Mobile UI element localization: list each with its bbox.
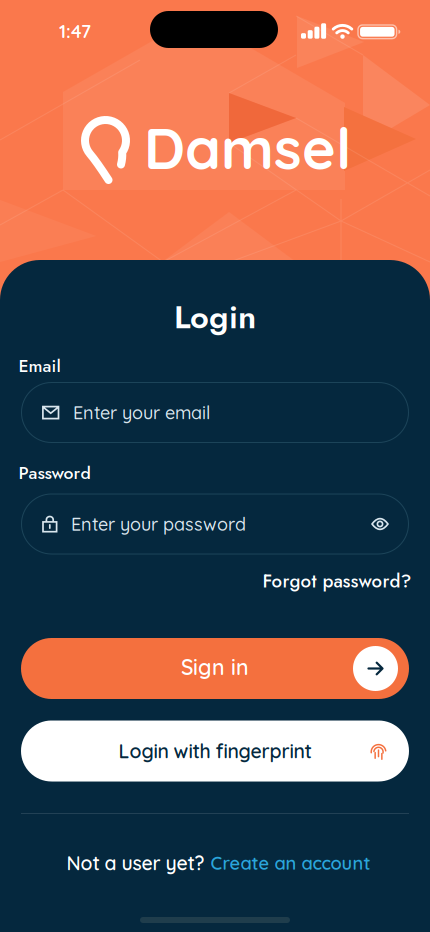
button[interactable]: Login with fingerprint bbox=[21, 720, 409, 781]
staticText: Create an account bbox=[210, 852, 370, 874]
staticText: Sign in bbox=[181, 654, 249, 680]
staticText: Enter your email bbox=[73, 401, 210, 424]
button[interactable]: Forgot password? bbox=[262, 567, 411, 594]
button[interactable]: Not a user yet? bbox=[66, 851, 370, 875]
staticText: Password bbox=[18, 460, 90, 486]
button[interactable]: Sign in bbox=[21, 638, 409, 699]
staticText: Damsel bbox=[144, 112, 351, 183]
staticText: Enter your password bbox=[71, 513, 246, 535]
button[interactable]: Enter your email bbox=[21, 382, 409, 443]
staticText: Forgot password? bbox=[262, 567, 411, 594]
button[interactable]: Enter your password bbox=[21, 493, 409, 554]
staticText: Login with fingerprint bbox=[118, 739, 311, 763]
staticText: Not a user yet? bbox=[66, 851, 204, 875]
staticText: Email bbox=[18, 353, 60, 379]
staticText: Login bbox=[174, 293, 256, 341]
staticText: 1:47 bbox=[59, 19, 91, 42]
